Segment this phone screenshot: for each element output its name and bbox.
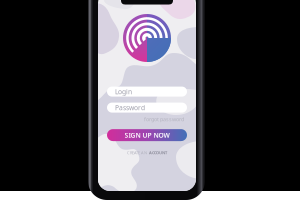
button[interactable]: forgot password bbox=[144, 116, 184, 123]
staticText: forgot password bbox=[144, 116, 184, 123]
button[interactable]: CREATE AN bbox=[125, 148, 169, 157]
staticText: CREATE AN bbox=[127, 150, 147, 155]
button[interactable]: SIGN UP NOW bbox=[107, 129, 187, 141]
button[interactable]: Password bbox=[107, 103, 187, 113]
staticText: Login bbox=[115, 87, 132, 96]
staticText: SIGN UP NOW bbox=[124, 131, 169, 140]
staticText: Password bbox=[115, 103, 145, 112]
staticText: ACCOUNT bbox=[149, 150, 167, 155]
button[interactable]: Login bbox=[107, 87, 187, 97]
